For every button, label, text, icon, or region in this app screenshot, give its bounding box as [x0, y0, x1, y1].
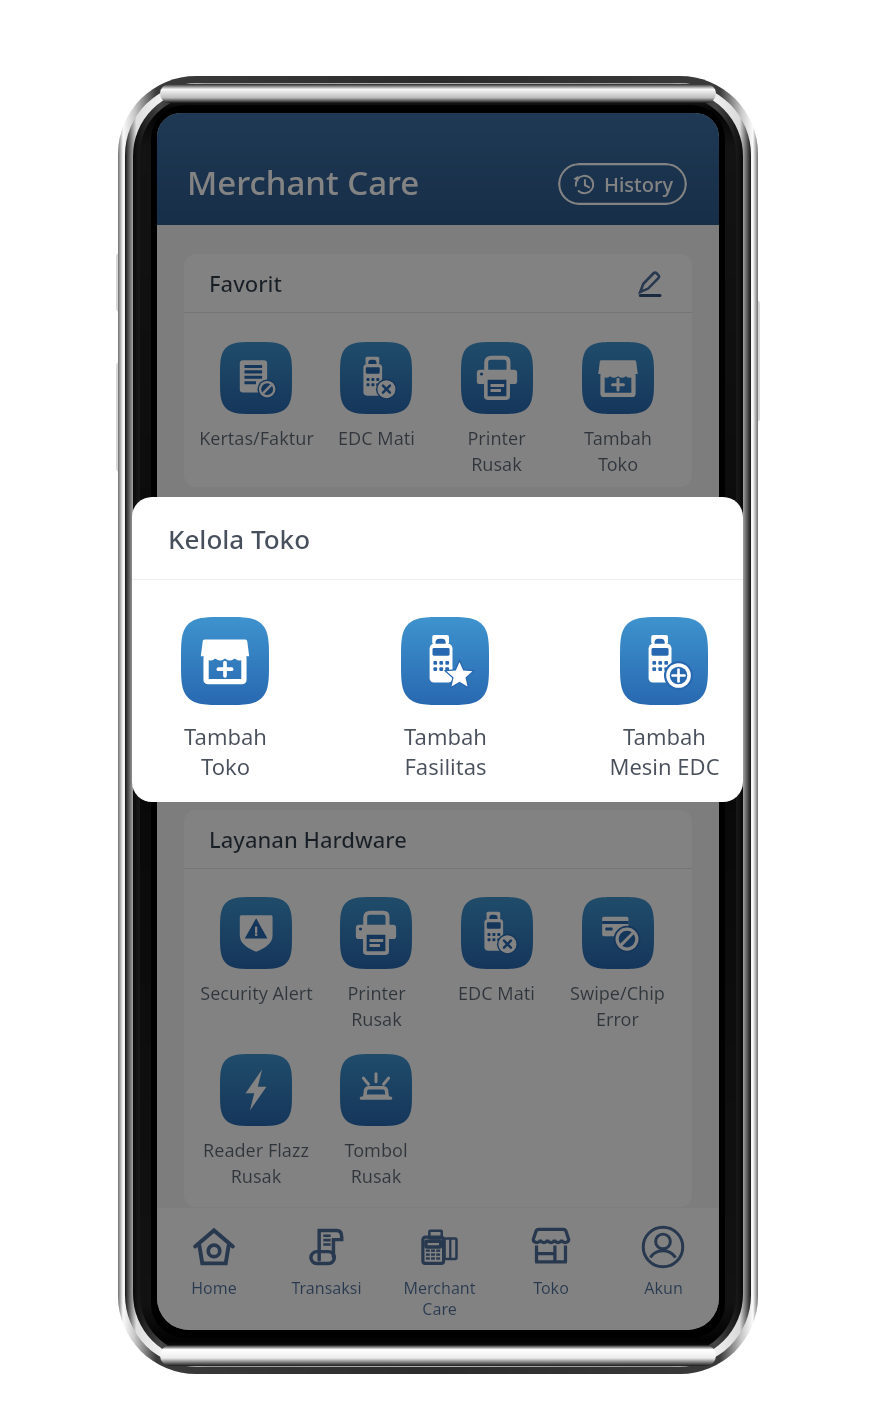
button[interactable]: EDC Mati: [316, 342, 436, 451]
staticText: Merchant Care: [403, 1277, 476, 1320]
button[interactable]: Transaksi: [270, 1208, 383, 1299]
button[interactable]: Kertas/Faktur: [196, 342, 316, 451]
button[interactable]: Tombol Rusak: [316, 1054, 436, 1189]
button[interactable]: Tambah Toko: [557, 342, 678, 477]
button[interactable]: Toko: [495, 1208, 607, 1299]
button[interactable]: History: [558, 163, 687, 205]
button[interactable]: Swipe/Chip Error: [557, 897, 678, 1032]
staticText: Kertas/Faktur: [199, 426, 314, 451]
button[interactable]: Printer Rusak: [316, 897, 436, 1032]
staticText: Reader Flazz Rusak: [203, 1138, 309, 1189]
staticText: Printer Rusak: [347, 981, 406, 1032]
staticText: EDC Mati: [338, 426, 415, 451]
staticText: Tambah Fasilitas: [404, 721, 487, 782]
button[interactable]: Printer Rusak: [436, 342, 557, 477]
staticText: Akun: [644, 1277, 683, 1299]
staticText: EDC Mati: [458, 981, 535, 1006]
button[interactable]: Tambah Mesin EDC: [569, 617, 743, 782]
staticText: Security Alert: [200, 981, 313, 1006]
button[interactable]: Security Alert: [196, 897, 316, 1006]
staticText: Toko: [533, 1277, 569, 1299]
staticText: Favorit: [209, 268, 282, 298]
staticText: Tombol Rusak: [344, 1138, 408, 1189]
staticText: Transaksi: [291, 1277, 362, 1299]
staticText: Merchant Care: [187, 160, 420, 205]
button[interactable]: Reader Flazz Rusak: [196, 1054, 316, 1189]
staticText: History: [604, 171, 673, 198]
button[interactable]: Tambah Fasilitas: [350, 617, 540, 782]
staticText: Kelola Toko: [168, 521, 311, 556]
staticText: Printer Rusak: [467, 426, 526, 477]
staticText: Tambah Toko: [184, 721, 267, 782]
button[interactable]: Akun: [607, 1208, 719, 1299]
staticText: Tambah Toko: [584, 426, 652, 477]
button[interactable]: Tambah Toko: [132, 617, 320, 782]
staticText: Tambah Mesin EDC: [609, 721, 720, 782]
staticText: Home: [191, 1277, 237, 1299]
button[interactable]: Home: [157, 1208, 270, 1299]
button[interactable]: Merchant Care: [383, 1208, 495, 1320]
staticText: Swipe/Chip Error: [570, 981, 665, 1032]
button[interactable]: Edit favorites: [630, 262, 672, 304]
staticText: Layanan Hardware: [209, 824, 407, 854]
button[interactable]: EDC Mati: [436, 897, 557, 1006]
